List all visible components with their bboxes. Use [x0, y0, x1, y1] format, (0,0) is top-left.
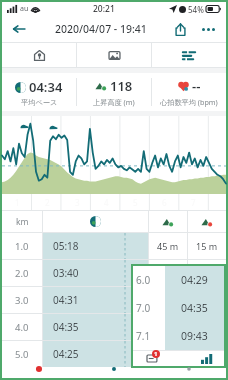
staticText: 4.0 [15, 321, 29, 334]
staticText: 平均ペース [21, 98, 58, 107]
staticText: 04:25 [53, 347, 79, 361]
button[interactable]: More options [194, 16, 222, 42]
staticText: 3.0 [15, 294, 29, 307]
staticText: 05:18 [53, 239, 79, 253]
button[interactable]: 3.0 [2, 287, 226, 313]
button[interactable]: Share [166, 16, 194, 42]
staticText: 03:40 [53, 266, 79, 280]
staticText: 7.0 [136, 301, 151, 315]
button[interactable]: Profile [151, 369, 226, 378]
staticText: km [16, 216, 29, 228]
staticText: 45 m [157, 240, 179, 252]
button[interactable]: 2.0 [2, 260, 226, 286]
staticText: -- [192, 77, 201, 95]
staticText: 6.0 [136, 273, 151, 287]
staticText: 54% [188, 4, 204, 15]
button[interactable]: Splits [152, 43, 226, 67]
staticText: 04:34 [29, 78, 63, 96]
staticText: 04:35 [181, 301, 208, 315]
button[interactable]: Activity [76, 369, 151, 378]
staticText: 2020/04/07 - 19:41 [55, 22, 147, 36]
button[interactable]: 04:34 [2, 73, 76, 111]
staticText: 09:43 [181, 329, 208, 343]
staticText: 5.0 [15, 348, 29, 361]
staticText: 04:29 [181, 273, 208, 287]
button[interactable]: 118 [77, 73, 151, 111]
staticText: 118 [110, 77, 133, 95]
button[interactable]: Map [2, 43, 76, 67]
staticText: 20:21 [93, 3, 115, 15]
button[interactable]: Photos [77, 43, 151, 67]
button[interactable]: -- [152, 73, 226, 111]
staticText: 上昇高度 (m) [93, 97, 135, 107]
staticText: 04:31 [53, 293, 79, 307]
staticText: 1 [154, 350, 158, 358]
button[interactable]: 5.0 [2, 341, 226, 367]
staticText: 心拍数平均 (bpm) [160, 97, 218, 107]
staticText: 04:35 [53, 320, 79, 334]
button[interactable]: 4.0 [2, 314, 226, 340]
button[interactable]: Records [2, 369, 76, 378]
button[interactable]: Back [2, 16, 36, 42]
staticText: 1.0 [15, 240, 29, 253]
staticText: 2.0 [15, 267, 29, 280]
staticText: au [20, 4, 29, 14]
staticText: 15 m [196, 240, 218, 252]
button[interactable]: 6.0 [133, 266, 224, 366]
button[interactable]: 1.0 [2, 233, 226, 259]
staticText: 7.1 [136, 329, 151, 343]
